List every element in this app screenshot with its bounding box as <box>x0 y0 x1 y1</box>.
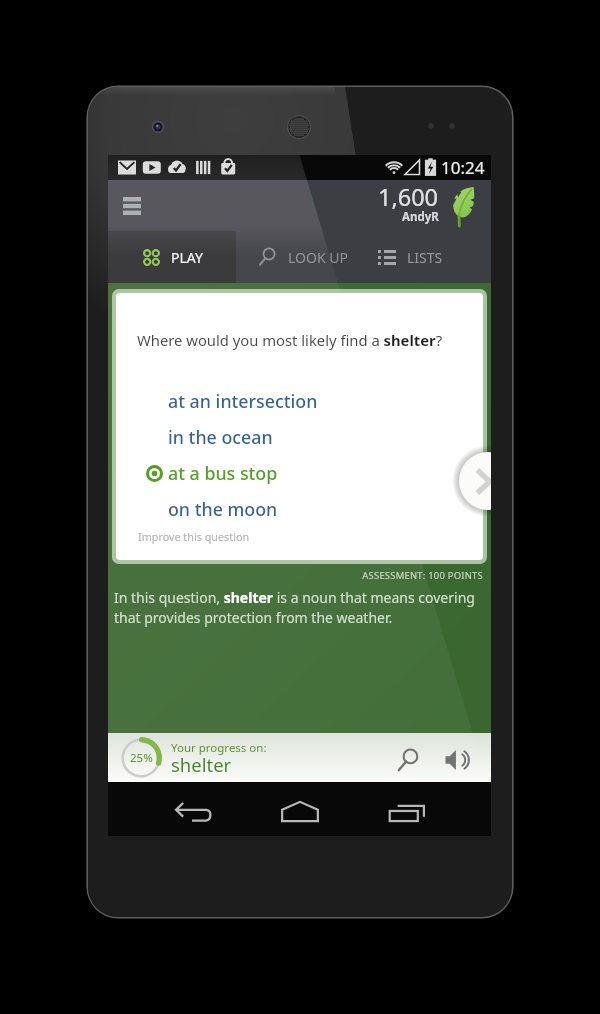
button[interactable]: Improve this question <box>138 529 250 544</box>
staticText: 10:24 <box>441 156 485 179</box>
staticText: 1,600 <box>378 181 439 213</box>
button[interactable]: Search <box>386 737 432 783</box>
button[interactable]: Home <box>272 784 328 836</box>
staticText: on the moon <box>168 497 278 521</box>
button[interactable]: at an intersection <box>116 383 483 419</box>
button[interactable]: Open navigation menu <box>115 189 149 223</box>
staticText: at a bus stop <box>168 461 278 485</box>
staticText: ASSESSMENT: 100 POINTS <box>108 569 483 582</box>
button[interactable]: LISTS <box>364 231 491 283</box>
button[interactable]: in the ocean <box>116 419 483 455</box>
staticText: AndyR <box>402 209 439 225</box>
button[interactable]: Next question <box>460 453 491 509</box>
staticText: LISTS <box>407 248 443 267</box>
button[interactable]: LOOK UP <box>236 231 364 283</box>
button[interactable]: Recent apps <box>379 785 435 836</box>
staticText: Your progress on: <box>171 740 267 756</box>
button[interactable]: Back <box>165 785 221 836</box>
staticText: In this question, shelter is a noun that… <box>114 588 487 627</box>
staticText: LOOK UP <box>288 248 348 267</box>
button[interactable]: PLAY <box>108 231 236 283</box>
staticText: 25% <box>130 750 153 766</box>
button[interactable]: at a bus stop <box>116 455 483 491</box>
button[interactable]: Pronounce word <box>435 737 481 783</box>
staticText: shelter <box>171 752 232 777</box>
staticText: Where would you most likely find a shelt… <box>137 330 443 350</box>
staticText: in the ocean <box>168 425 273 449</box>
button[interactable]: on the moon <box>116 491 483 527</box>
staticText: at an intersection <box>168 389 318 413</box>
staticText: PLAY <box>171 248 203 267</box>
